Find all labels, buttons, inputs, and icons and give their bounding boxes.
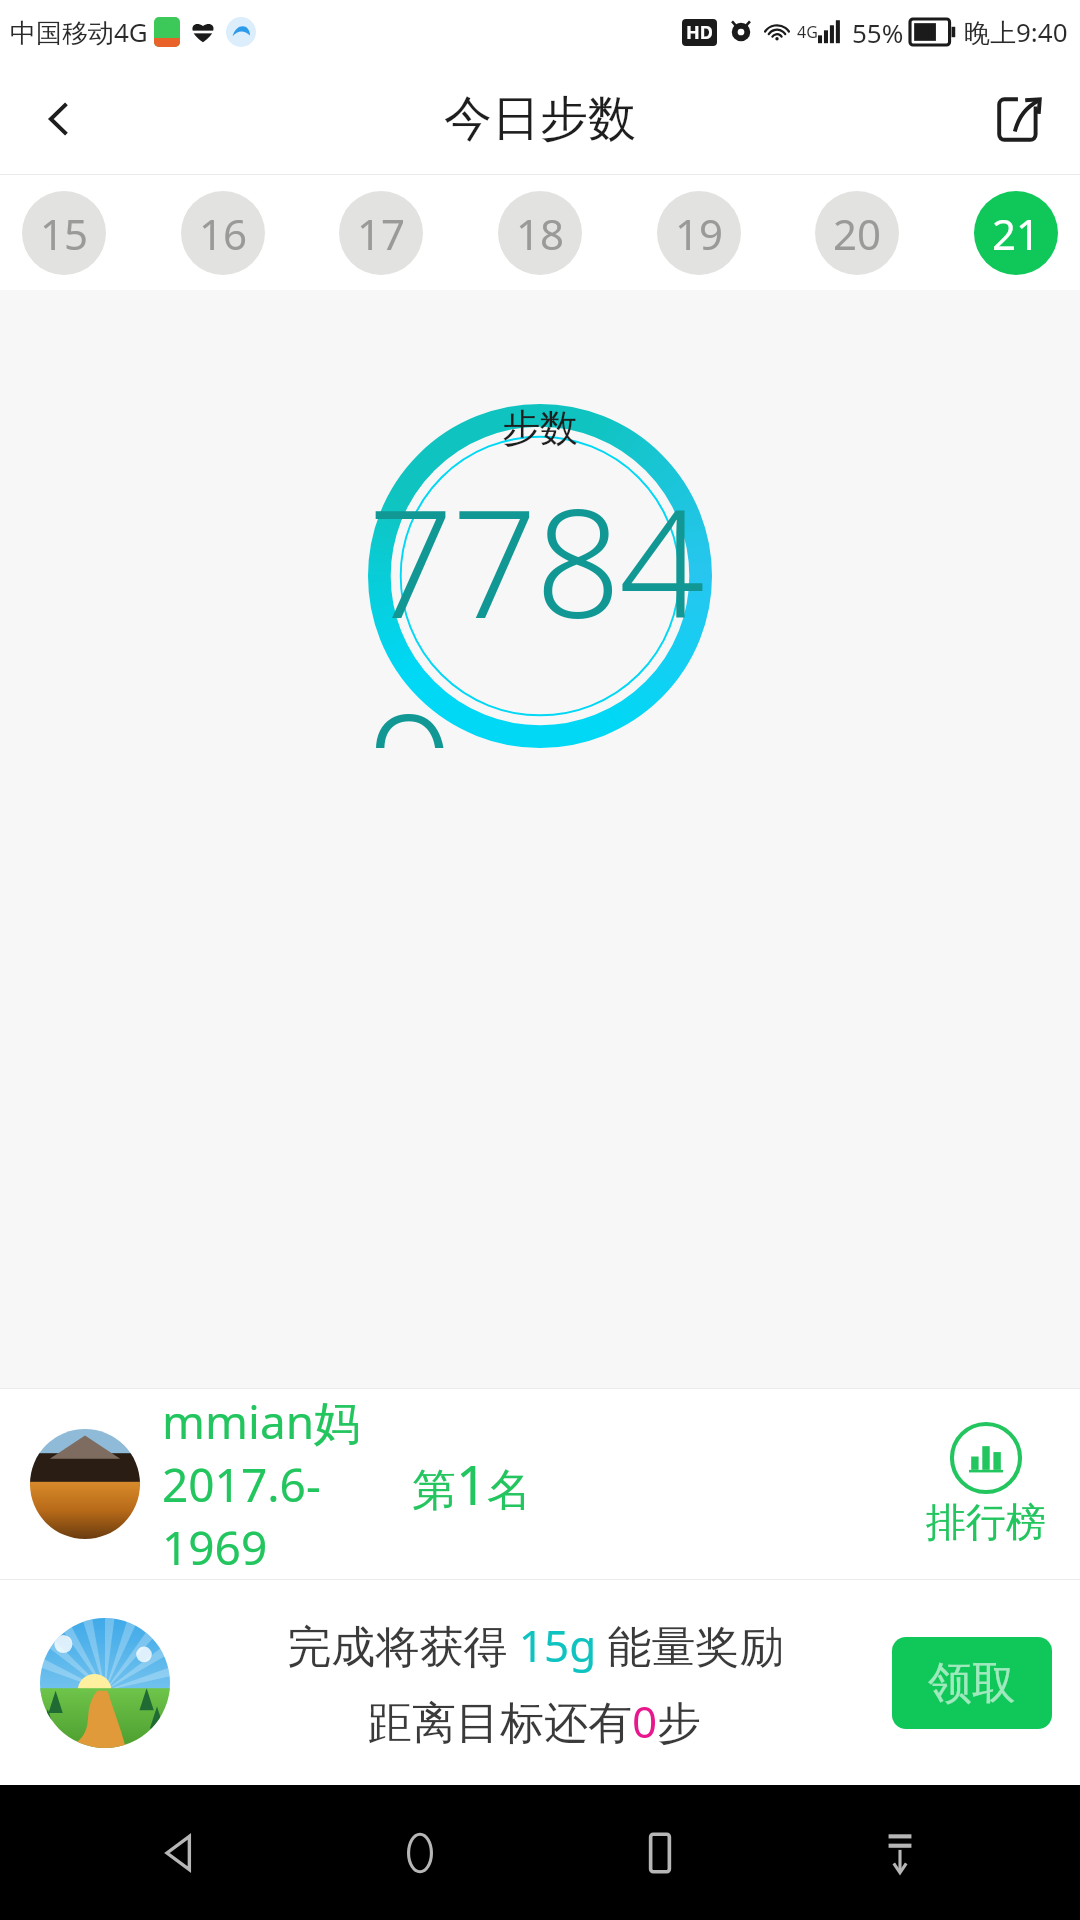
staticText: 55% xyxy=(852,15,904,50)
staticText: 18 xyxy=(516,205,565,262)
staticText: HD xyxy=(686,20,713,45)
button[interactable]: Share xyxy=(960,64,1080,174)
staticText: mmian妈 xyxy=(162,1390,361,1453)
button[interactable]: 19 xyxy=(657,191,741,275)
staticText: 中国移动4G xyxy=(10,14,148,50)
staticText: 21 xyxy=(992,205,1041,262)
staticText: 领取 xyxy=(928,1656,1016,1711)
button[interactable]: 18 xyxy=(498,191,582,275)
button[interactable]: 21 xyxy=(974,191,1058,275)
staticText: 晚上9:40 xyxy=(964,14,1068,50)
staticText: 排行榜 xyxy=(926,1497,1046,1547)
staticText: 今日步数 xyxy=(444,89,636,149)
staticText: 77849 xyxy=(368,458,712,748)
staticText: 16 xyxy=(199,205,248,262)
button[interactable]: Back xyxy=(120,1793,240,1913)
button[interactable]: 排行榜 xyxy=(922,1417,1050,1551)
staticText: 2017.6- xyxy=(162,1453,321,1516)
button[interactable]: 20 xyxy=(815,191,899,275)
button[interactable]: mmian妈 xyxy=(0,1389,1080,1579)
staticText: 15 xyxy=(40,205,89,262)
button[interactable]: Home xyxy=(360,1793,480,1913)
button[interactable]: Back xyxy=(0,64,120,174)
staticText: 17 xyxy=(357,205,406,262)
staticText: 20 xyxy=(833,205,882,262)
staticText: 第1名 xyxy=(412,1447,531,1521)
staticText: 距离目标还有0步 xyxy=(368,1691,702,1751)
button[interactable]: 领取 xyxy=(892,1637,1052,1729)
staticText: 4G xyxy=(797,21,818,43)
button[interactable]: Hide navigation bar xyxy=(840,1793,960,1913)
button[interactable]: 17 xyxy=(339,191,423,275)
staticText: 步数 xyxy=(502,404,578,452)
staticText: 1969 xyxy=(162,1516,268,1579)
staticText: 19 xyxy=(675,205,724,262)
staticText: 完成将获得 15g 能量奖励 xyxy=(287,1615,784,1675)
button[interactable]: 15 xyxy=(22,191,106,275)
button[interactable]: Recents xyxy=(600,1793,720,1913)
button[interactable]: 16 xyxy=(181,191,265,275)
